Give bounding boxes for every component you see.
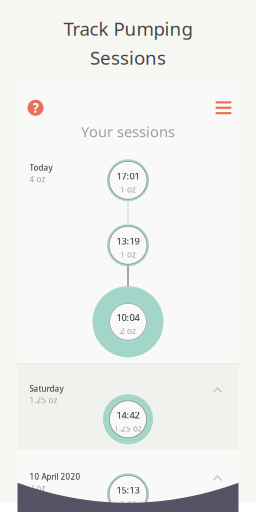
staticText: 14:42: [116, 409, 139, 421]
button[interactable]: Collapse section: [208, 383, 226, 397]
button[interactable]: Menu: [210, 96, 236, 120]
staticText: Saturday: [29, 383, 63, 394]
staticText: 1 oz: [120, 498, 136, 509]
staticText: 2 oz: [29, 483, 45, 493]
staticText: 4 oz: [29, 174, 45, 184]
staticText: 1 oz: [120, 249, 136, 260]
button[interactable]: Collapse section: [208, 471, 226, 485]
staticText: 2 oz: [120, 326, 136, 336]
staticText: 1.25 oz: [29, 395, 57, 405]
staticText: 15:13: [116, 484, 139, 496]
staticText: 10:04: [116, 311, 139, 324]
staticText: Your sessions: [81, 122, 175, 141]
staticText: 17:01: [116, 170, 139, 182]
staticText: Today: [29, 162, 52, 173]
staticText: Track Pumping: [63, 16, 192, 41]
button[interactable]: Help: [22, 96, 48, 120]
staticText: 1.25 oz: [114, 423, 142, 434]
staticText: 10 April 2020: [29, 471, 80, 482]
staticText: Sessions: [90, 45, 166, 70]
staticText: 1 oz: [120, 184, 136, 195]
staticText: 13:19: [116, 235, 139, 247]
staticText: ?: [32, 99, 38, 117]
